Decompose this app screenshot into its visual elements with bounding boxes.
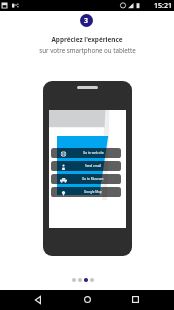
button[interactable]: Send email <box>51 161 121 171</box>
staticText: Go to Museum <box>82 177 104 181</box>
button[interactable]: Recents <box>126 290 174 310</box>
staticText: Go to web site <box>83 151 104 155</box>
button[interactable]: Google Map <box>51 187 121 197</box>
staticText: 15:21 <box>154 1 172 11</box>
button[interactable]: Go to Museum <box>51 174 121 184</box>
staticText: Google Map <box>84 190 102 194</box>
staticText: Appréciez l'expérience <box>51 35 123 44</box>
button[interactable]: Go to web site <box>51 148 121 158</box>
staticText: 3 <box>84 16 89 26</box>
staticText: Send email <box>85 164 102 168</box>
staticText: sur votre smartphone ou tablette <box>39 46 136 54</box>
button[interactable]: Back <box>27 290 174 310</box>
button[interactable]: Home <box>77 290 174 310</box>
